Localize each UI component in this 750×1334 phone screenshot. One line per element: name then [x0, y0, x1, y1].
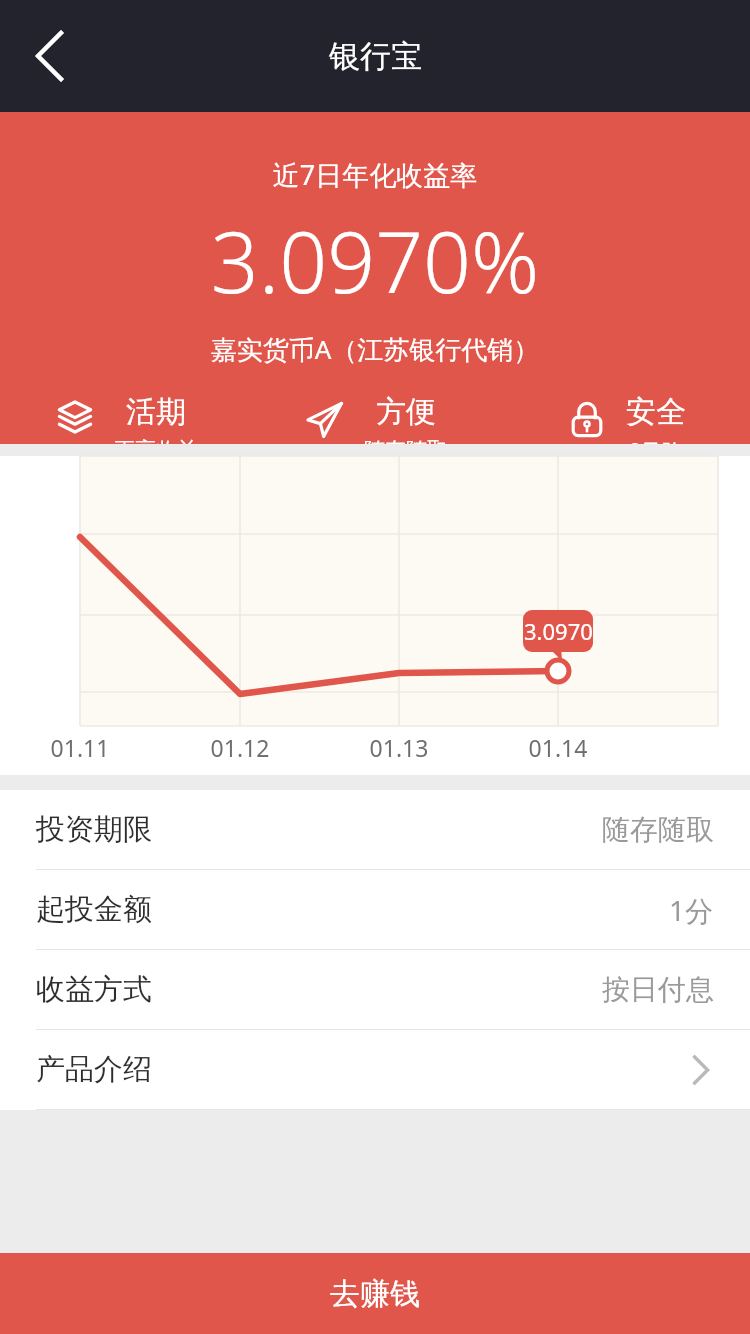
staticText: 投资期限: [36, 811, 152, 848]
button[interactable]: 安全: [500, 393, 750, 444]
staticText: 随存随取: [602, 812, 714, 847]
button[interactable]: 产品介绍: [0, 1030, 750, 1109]
staticText: 1分: [669, 891, 714, 929]
button[interactable]: 活期: [0, 393, 250, 444]
staticText: 收益方式: [36, 971, 152, 1008]
staticText: 随存随取: [364, 437, 448, 444]
staticText: 01.11: [30, 732, 130, 763]
button[interactable]: 去赚钱: [0, 1253, 750, 1334]
staticText: 按日付息: [602, 972, 714, 1007]
staticText: 嘉实货币A（江苏银行代销）: [0, 331, 750, 367]
staticText: 银行宝: [329, 37, 422, 76]
button[interactable]: Back: [12, 18, 88, 94]
staticText: 01.13: [349, 732, 449, 763]
staticText: 起投金额: [36, 891, 152, 928]
staticText: 0风险: [629, 437, 684, 444]
staticText: 方便: [376, 393, 436, 431]
staticText: 更高收益: [114, 437, 198, 444]
button[interactable]: 收益方式: [0, 950, 750, 1029]
button[interactable]: 方便: [250, 393, 500, 444]
staticText: 安全: [626, 393, 686, 431]
staticText: 3.0970: [524, 616, 593, 646]
staticText: 去赚钱: [330, 1275, 420, 1313]
button[interactable]: 起投金额: [0, 870, 750, 949]
staticText: 近7日年化收益率: [0, 156, 750, 193]
staticText: 01.14: [508, 732, 608, 763]
staticText: 产品介绍: [36, 1051, 152, 1088]
staticText: 3.0970%: [0, 203, 750, 317]
staticText: 01.12: [190, 732, 290, 763]
button[interactable]: 投资期限: [0, 790, 750, 869]
staticText: 活期: [126, 393, 186, 431]
